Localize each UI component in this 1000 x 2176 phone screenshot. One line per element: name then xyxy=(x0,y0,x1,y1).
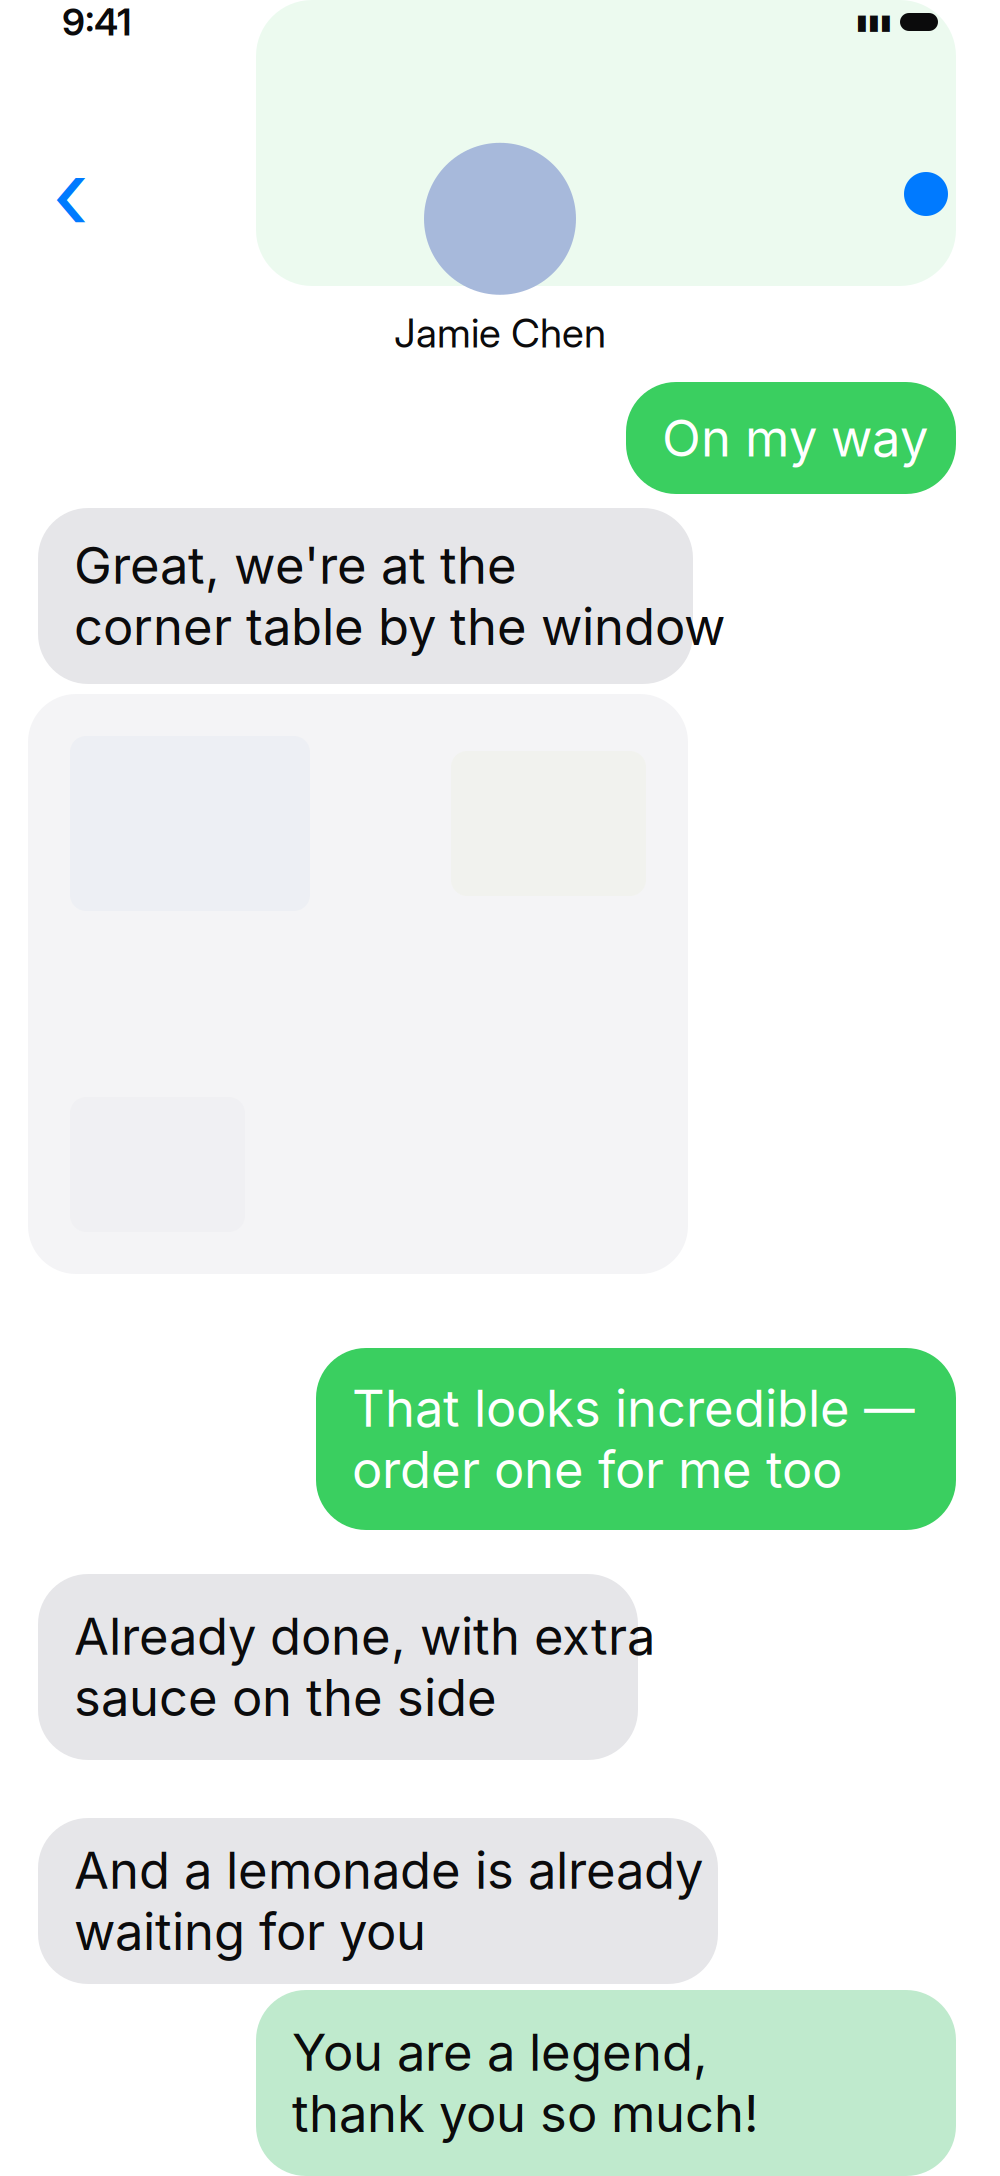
button[interactable]: And a lemonade is already waiting for yo… xyxy=(38,1818,718,1984)
staticText: Great, we're at the corner table by the … xyxy=(74,535,725,657)
button[interactable]: Start video call xyxy=(886,172,966,216)
staticText: On my way xyxy=(662,407,928,469)
staticText: ‹ xyxy=(52,136,89,252)
staticText: You are a legend, thank you so much! xyxy=(292,2022,759,2144)
staticText: 9:41 xyxy=(62,0,132,45)
button[interactable]: You are a legend, thank you so much! xyxy=(256,1990,956,2176)
staticText: Already done, with extra sauce on the si… xyxy=(74,1606,655,1728)
button[interactable]: On my way xyxy=(626,382,956,494)
button[interactable]: Back xyxy=(34,136,107,252)
button[interactable]: Great, we're at the corner table by the … xyxy=(38,508,693,684)
staticText: Jamie Chen xyxy=(394,309,606,357)
staticText: ▮▮▮ xyxy=(856,10,892,34)
button[interactable]: Already done, with extra sauce on the si… xyxy=(38,1574,638,1760)
staticText: That looks incredible — order one for me… xyxy=(352,1378,915,1500)
staticText: And a lemonade is already waiting for yo… xyxy=(74,1840,703,1962)
button[interactable]: That looks incredible — order one for me… xyxy=(316,1348,956,1530)
button[interactable]: Jamie Chen xyxy=(394,31,606,357)
